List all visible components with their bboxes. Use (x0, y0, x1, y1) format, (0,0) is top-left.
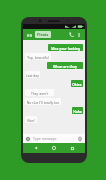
button[interactable]: Back (31, 143, 41, 153)
button[interactable]: Okiee (71, 80, 83, 87)
staticText: Miss your looking so posh (49, 46, 82, 50)
button[interactable]: Nice! (25, 116, 37, 123)
staticText: They aren't playing either (26, 91, 53, 95)
button[interactable]: Emoji (25, 136, 31, 142)
staticText: Flexis (37, 32, 49, 37)
button[interactable]: Home (49, 143, 59, 153)
button[interactable]: Haha (72, 107, 83, 114)
staticText: Last day (26, 73, 39, 77)
staticText: When are they playing there? (48, 64, 82, 68)
button[interactable]: Last day (25, 71, 40, 78)
staticText: Yup, beautiful course (26, 55, 50, 59)
staticText: Okiee (72, 82, 82, 86)
staticText: Nice! (26, 118, 36, 122)
staticText: No clue I'll totally too easy haha (26, 100, 60, 104)
button[interactable]: Yup, beautiful course (25, 53, 51, 60)
button[interactable]: Flexis (37, 32, 49, 37)
button[interactable]: No clue I'll totally too easy haha (25, 98, 61, 105)
button[interactable]: Miss your looking so posh (48, 44, 83, 51)
button[interactable]: When are they playing there? (47, 62, 83, 69)
button[interactable]: They aren't playing either (25, 89, 54, 96)
button[interactable]: More options (76, 32, 82, 38)
staticText: Haha (73, 109, 82, 113)
button[interactable]: Recent apps (67, 143, 77, 153)
button[interactable]: Call (68, 31, 75, 38)
staticText: Type message (33, 136, 77, 141)
button[interactable]: Attach (77, 136, 83, 142)
button[interactable]: Menu (26, 32, 32, 38)
